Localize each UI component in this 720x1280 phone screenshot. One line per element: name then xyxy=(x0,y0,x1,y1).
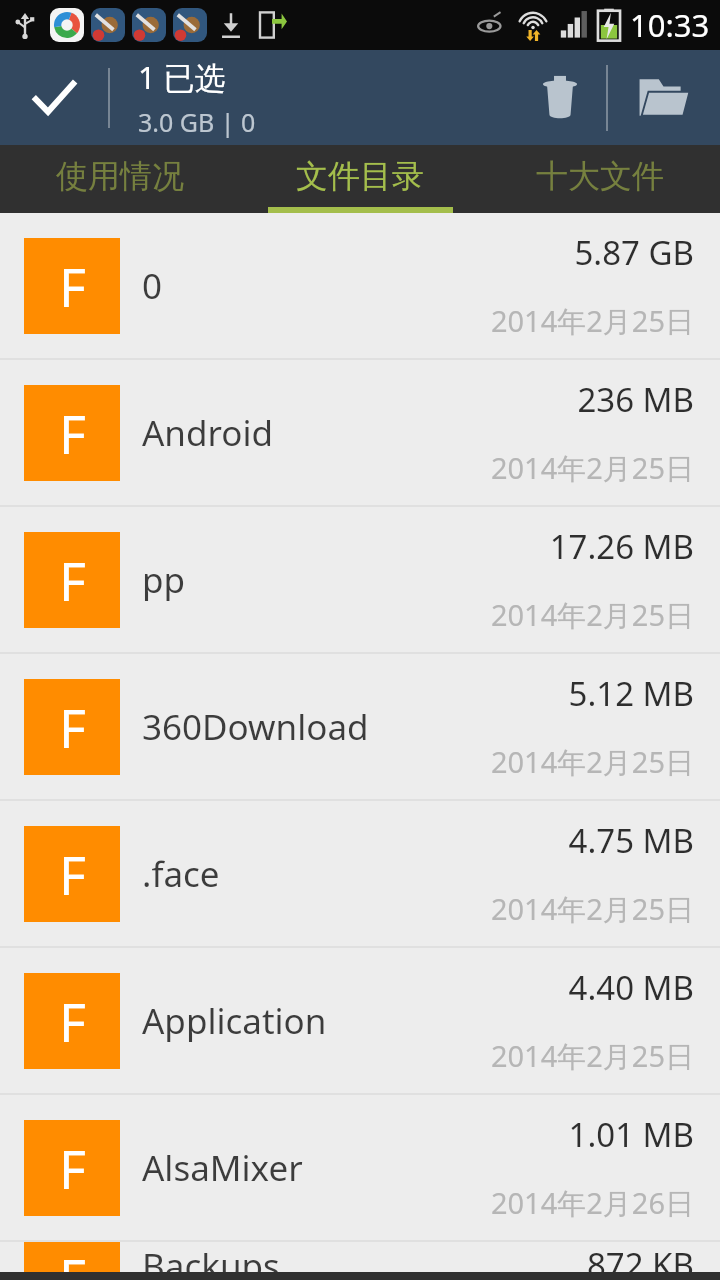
staticText: 2014年2月25日 xyxy=(490,301,694,341)
button[interactable]: F xyxy=(0,213,720,358)
staticText: .face xyxy=(142,850,220,898)
staticText: F xyxy=(59,398,86,469)
button[interactable]: Move to folder xyxy=(608,50,720,145)
button[interactable]: 十大文件 xyxy=(480,145,720,207)
staticText: pp xyxy=(142,556,186,604)
staticText: 236 MB xyxy=(577,377,694,422)
button[interactable]: F xyxy=(0,801,720,946)
staticText: F xyxy=(59,251,86,322)
staticText: F xyxy=(59,545,86,616)
button[interactable]: F xyxy=(0,1095,720,1240)
staticText: 2014年2月25日 xyxy=(490,742,694,782)
staticText: 十大文件 xyxy=(536,156,664,196)
staticText: 5.87 GB xyxy=(574,230,694,275)
staticText: 使用情况 xyxy=(56,156,184,196)
button[interactable]: Confirm selection xyxy=(0,50,108,145)
staticText: F xyxy=(59,1242,86,1280)
staticText: 0 xyxy=(142,262,163,310)
staticText: 文件目录 xyxy=(296,156,424,196)
staticText: 4.75 MB xyxy=(568,818,694,863)
button[interactable]: F xyxy=(0,1242,720,1280)
staticText: 2014年2月25日 xyxy=(490,889,694,929)
staticText: 872 KB xyxy=(586,1242,694,1280)
staticText: 2014年2月25日 xyxy=(490,595,694,635)
staticText: Android xyxy=(142,409,274,457)
staticText: AlsaMixer xyxy=(142,1144,303,1192)
staticText: 2014年2月26日 xyxy=(490,1183,694,1223)
staticText: F xyxy=(59,986,86,1057)
button[interactable]: F xyxy=(0,507,720,652)
staticText: 1.01 MB xyxy=(568,1112,694,1157)
staticText: Application xyxy=(142,997,327,1045)
button[interactable]: 使用情况 xyxy=(0,145,240,207)
staticText: 360Download xyxy=(142,703,369,751)
staticText: Backups xyxy=(142,1242,280,1280)
button[interactable]: F xyxy=(0,948,720,1093)
staticText: 2014年2月25日 xyxy=(490,448,694,488)
staticText: F xyxy=(59,1133,86,1204)
button[interactable]: F xyxy=(0,360,720,505)
staticText: 1 已选 xyxy=(138,56,226,98)
staticText: 10:33 xyxy=(630,4,710,46)
staticText: 5.12 MB xyxy=(568,671,694,716)
staticText: F xyxy=(59,692,86,763)
staticText: 17.26 MB xyxy=(549,524,694,569)
staticText: 2014年2月25日 xyxy=(490,1036,694,1076)
button[interactable]: 文件目录 xyxy=(240,145,480,207)
staticText: 3.0 GB | 0 xyxy=(138,105,256,139)
button[interactable]: Delete xyxy=(514,50,606,145)
button[interactable]: F xyxy=(0,654,720,799)
staticText: F xyxy=(59,839,86,910)
staticText: 4.40 MB xyxy=(568,965,694,1010)
